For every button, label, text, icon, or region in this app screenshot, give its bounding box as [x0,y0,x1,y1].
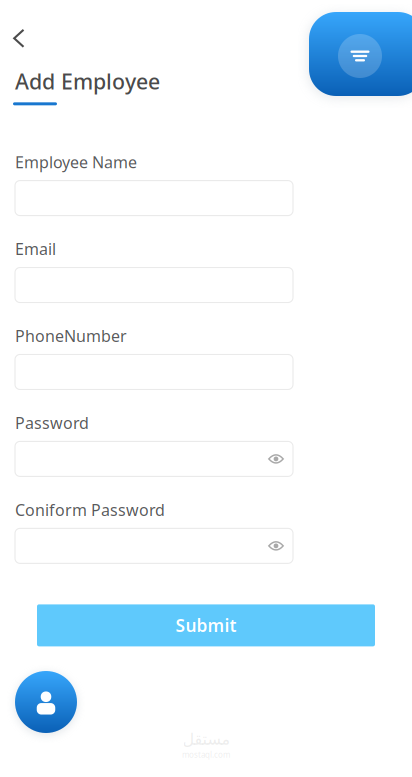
button[interactable]: Show Password [259,442,293,476]
staticText: Password [15,412,89,433]
staticText: Submit [175,614,236,637]
staticText: Add Employee [15,67,160,95]
staticText: Email [15,238,56,259]
staticText: PhoneNumber [15,325,127,346]
button[interactable]: Add employee [15,671,77,733]
staticText: Coniform Password [15,499,165,520]
staticText: مستقل [182,730,230,748]
button[interactable]: Back [0,0,43,67]
button[interactable]: Show Coniform Password [259,529,293,563]
button[interactable]: Submit [37,604,375,646]
staticText: mostaql.com [182,749,230,760]
staticText: Employee Name [15,151,137,172]
